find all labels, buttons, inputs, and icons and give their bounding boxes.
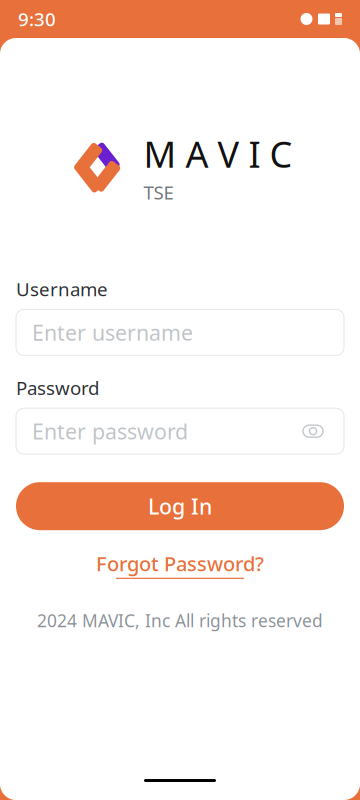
staticText: Username	[16, 277, 108, 301]
staticText: Forgot Password?	[96, 550, 264, 577]
staticText: TSE	[143, 180, 173, 205]
staticText: M A V I C	[143, 130, 292, 178]
staticText: 9:30	[18, 7, 56, 31]
staticText: 2024 MAVIC, Inc All rights reserved	[37, 609, 323, 632]
button[interactable]: Log In	[16, 482, 344, 530]
staticText: Enter username	[32, 318, 193, 346]
staticText: Enter password	[32, 417, 188, 445]
button[interactable]: Forgot Password?	[96, 550, 264, 579]
button[interactable]: Show password	[298, 416, 328, 446]
staticText: Log In	[148, 492, 212, 520]
staticText: Password	[16, 375, 99, 400]
